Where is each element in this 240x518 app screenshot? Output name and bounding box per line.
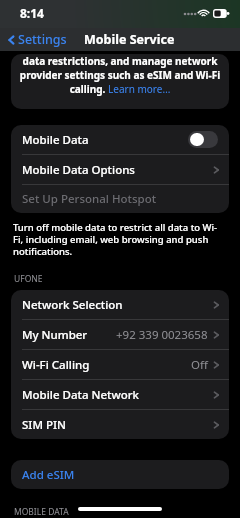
staticText: My Number [22, 327, 88, 343]
staticText: Wi-Fi Calling [22, 357, 90, 373]
button[interactable]: Mobile Data Network [11, 380, 229, 409]
button[interactable]: data restrictions, and manage network pr… [11, 54, 229, 109]
staticText: Turn off mobile data to restrict all dat… [13, 221, 224, 258]
button[interactable]: Mobile Data Options [11, 155, 229, 184]
staticText: Mobile Data [22, 132, 89, 148]
staticText: Mobile Service [84, 31, 175, 48]
button[interactable]: Mobile Data [11, 125, 229, 154]
button[interactable]: Network Selection [11, 290, 229, 319]
staticText: Mobile Data Network [22, 387, 139, 403]
button[interactable]: SIM PIN [11, 410, 229, 439]
staticText: data restrictions, and manage network pr… [18, 54, 222, 96]
staticText: Off [191, 357, 208, 373]
button[interactable]: Add eSIM [11, 460, 229, 489]
staticText: Set Up Personal Hotspot [22, 191, 157, 207]
staticText: +92 339 0023658 [116, 327, 208, 343]
staticText: Mobile Data Options [22, 162, 135, 178]
staticText: UFONE [14, 273, 43, 285]
staticText: MOBILE DATA [14, 506, 69, 518]
staticText: Add eSIM [22, 467, 75, 483]
staticText: Settings [18, 31, 67, 48]
button[interactable]: Set Up Personal Hotspot [11, 185, 229, 213]
button[interactable]: Back [6, 31, 67, 48]
staticText: Network Selection [22, 297, 123, 313]
staticText: 8:14 [20, 5, 44, 21]
staticText: SIM PIN [22, 417, 66, 433]
button[interactable]: Wi-Fi Calling [11, 350, 229, 379]
button[interactable]: My Number [11, 320, 229, 349]
other: Back [6, 33, 18, 47]
other: Mobile Data toggle, off [188, 131, 218, 148]
